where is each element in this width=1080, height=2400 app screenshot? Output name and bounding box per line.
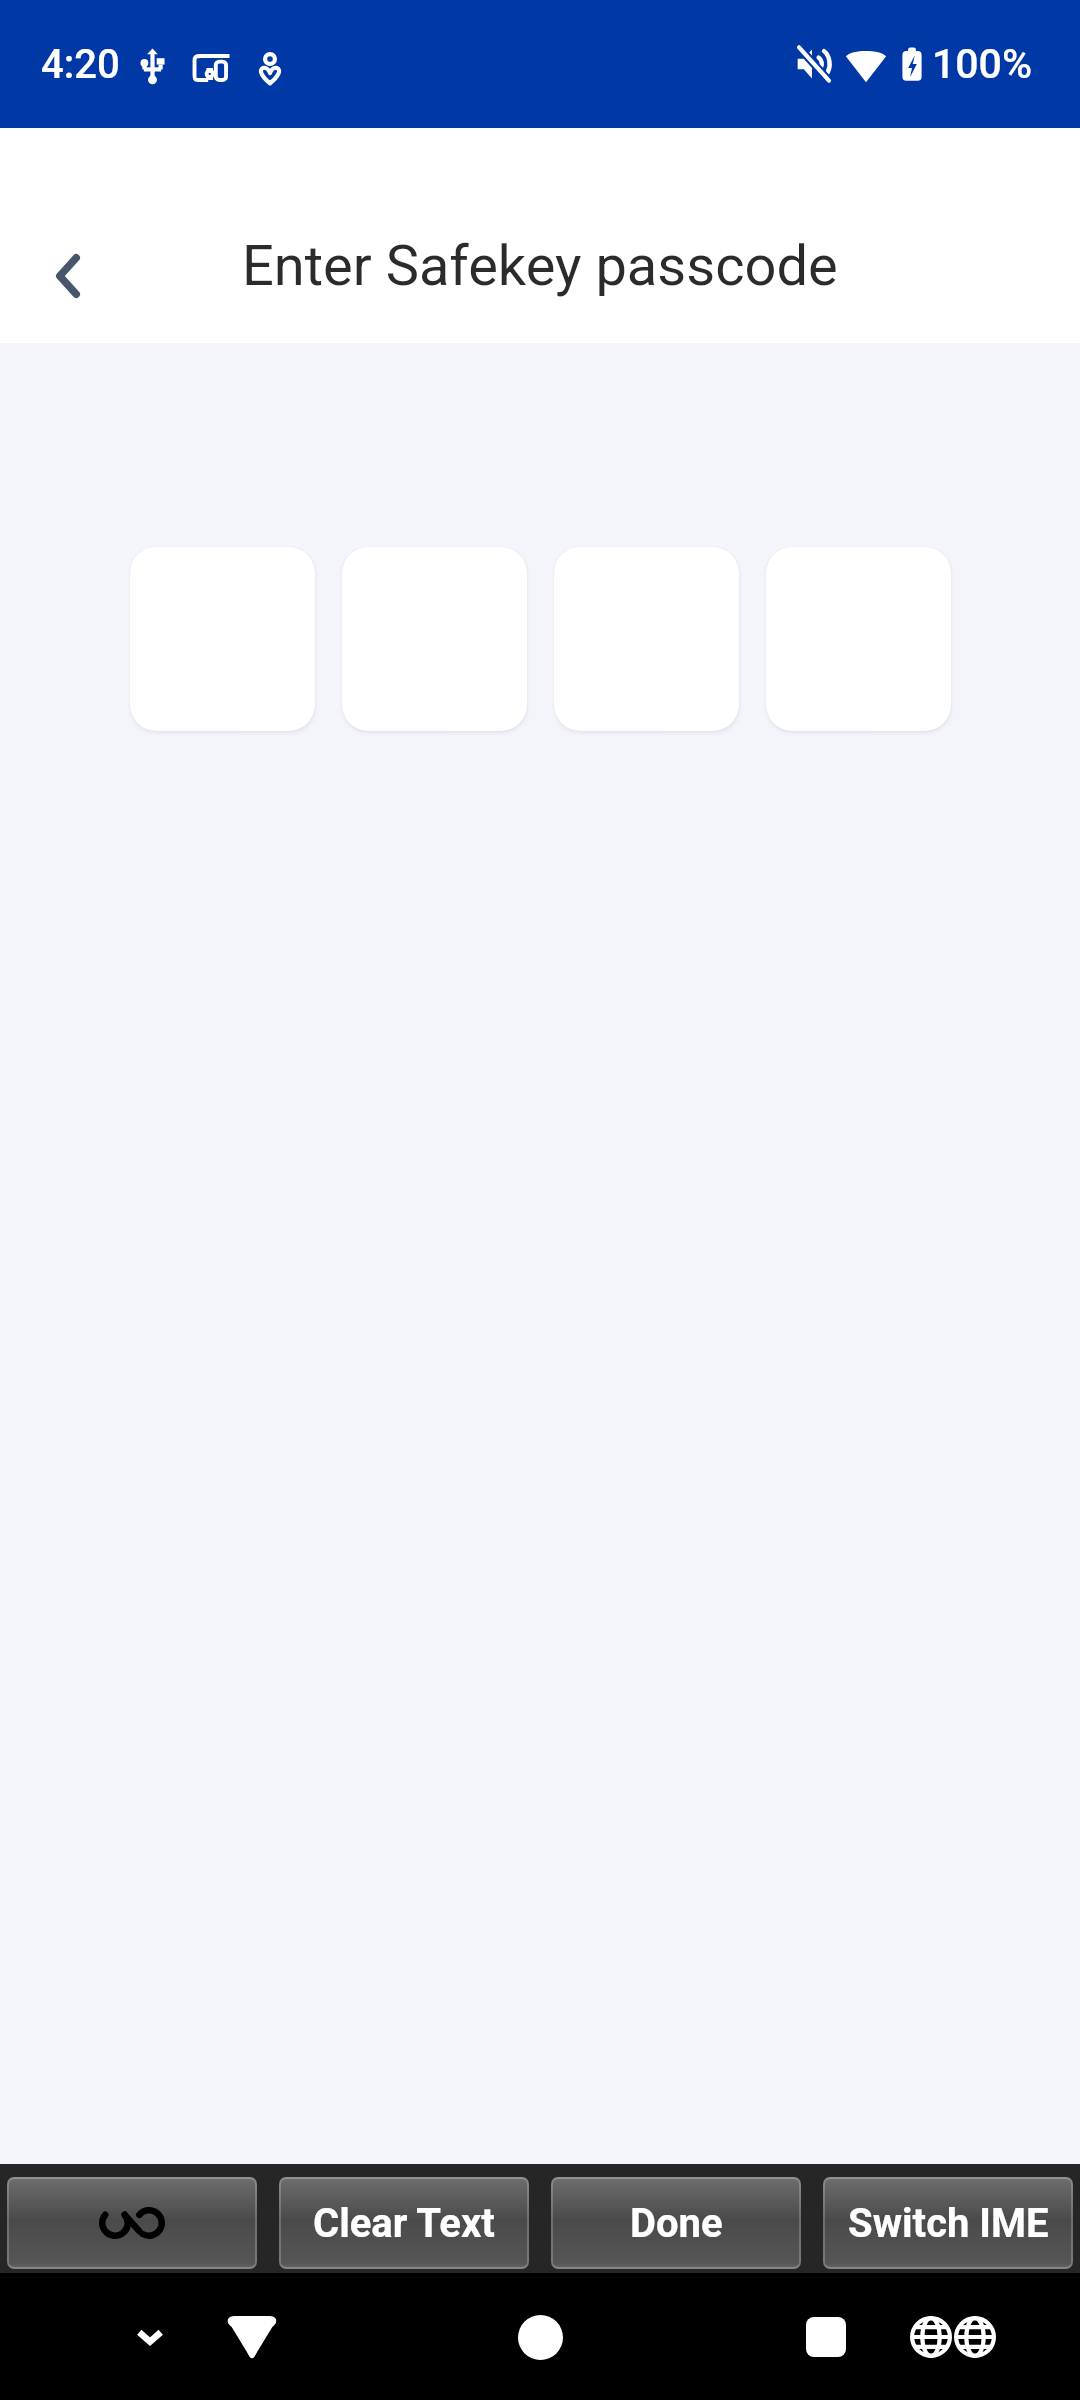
button[interactable]: Clear Text bbox=[279, 2177, 529, 2269]
button[interactable]: Hide keyboard bbox=[105, 2273, 195, 2400]
button[interactable]: Done bbox=[551, 2177, 801, 2269]
button[interactable]: Switch IME bbox=[823, 2177, 1073, 2269]
button[interactable]: Back bbox=[207, 2273, 297, 2400]
button[interactable]: Back bbox=[20, 228, 116, 324]
staticText: Enter Safekey passcode bbox=[242, 233, 838, 299]
staticText: Switch IME bbox=[848, 2200, 1049, 2247]
button[interactable]: Switch input method bbox=[892, 2273, 1014, 2400]
staticText: 100% bbox=[932, 40, 1033, 88]
staticText: Clear Text bbox=[313, 2200, 495, 2247]
staticText: 4:20 bbox=[41, 41, 120, 88]
button[interactable]: Infinity bbox=[7, 2177, 257, 2269]
button[interactable]: Recents bbox=[781, 2273, 871, 2400]
button[interactable]: Home bbox=[490, 2287, 590, 2387]
staticText: Done bbox=[630, 2200, 723, 2247]
